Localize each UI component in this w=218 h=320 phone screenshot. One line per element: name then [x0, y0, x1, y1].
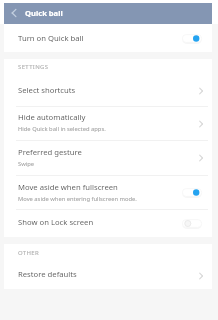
- staticText: Show on Lock screen: [18, 217, 94, 227]
- staticText: Swipe: [18, 160, 35, 168]
- staticText: Hide automatically: [18, 112, 86, 122]
- staticText: OTHER: [18, 249, 40, 257]
- button[interactable]: Turn on Quick ball: [4, 24, 212, 52]
- staticText: Turn on Quick ball: [18, 33, 84, 43]
- staticText: Restore defaults: [18, 269, 77, 279]
- button[interactable]: Open: [196, 271, 206, 281]
- button[interactable]: Open: [196, 153, 206, 163]
- button[interactable]: Open: [196, 86, 206, 96]
- button[interactable]: Select shortcuts: [4, 76, 212, 106]
- button[interactable]: Toggle off: [182, 218, 202, 229]
- button[interactable]: Restore defaults: [4, 262, 212, 289]
- button[interactable]: Back: [8, 7, 20, 19]
- staticText: Move aside when fullscreen: [18, 182, 118, 192]
- button[interactable]: Hide automatically: [4, 107, 212, 140]
- staticText: Select shortcuts: [18, 85, 76, 95]
- button[interactable]: Open: [196, 119, 206, 129]
- staticText: Quick ball: [25, 8, 63, 18]
- button[interactable]: Show on Lock screen: [4, 210, 212, 237]
- button[interactable]: Toggle on: [182, 187, 202, 198]
- staticText: Preferred gesture: [18, 147, 82, 157]
- button[interactable]: Toggle on: [182, 33, 202, 44]
- staticText: Move aside when entering fullscreen mode…: [18, 195, 137, 203]
- staticText: Hide Quick ball in selected apps.: [18, 125, 106, 133]
- staticText: SETTINGS: [18, 63, 49, 71]
- button[interactable]: Preferred gesture: [4, 141, 212, 175]
- button[interactable]: Move aside when fullscreen: [4, 176, 212, 209]
